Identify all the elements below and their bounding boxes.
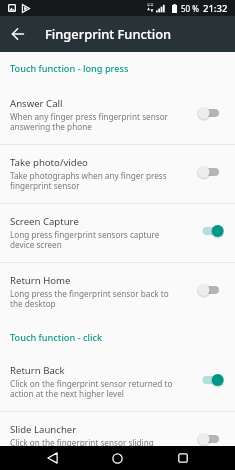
staticText: Answer Call	[10, 97, 63, 110]
button[interactable]: Home	[85, 446, 150, 470]
staticText: Click on the fingerprint sensor returned…	[10, 378, 173, 399]
staticText: Screen Capture	[10, 215, 79, 228]
button[interactable]: Take photo/video	[0, 145, 235, 203]
staticText: Long press fingerprint sensors capture d…	[10, 229, 160, 250]
staticText: Touch function - click	[10, 331, 103, 344]
staticText: 50 %	[181, 3, 199, 14]
staticText: Click on the fingerprint sensor sliding …	[10, 437, 154, 458]
staticText: Return Home	[10, 274, 71, 287]
staticText: 21:32	[203, 2, 228, 15]
staticText: When any finger press fingerprint sensor…	[10, 111, 168, 132]
staticText: Return Back	[10, 364, 65, 377]
button[interactable]: Screen Capture	[0, 204, 235, 262]
staticText: Touch function - long press	[10, 62, 129, 75]
button[interactable]: Slide Launcher	[0, 412, 235, 470]
button[interactable]: Back	[20, 446, 85, 470]
staticText: Slide Launcher	[10, 423, 77, 436]
button[interactable]: Return Home	[0, 263, 235, 321]
staticText: Take photo/video	[10, 156, 88, 169]
staticText: Fingerprint Function	[45, 25, 172, 43]
staticText: Take photographs when any finger press f…	[10, 170, 167, 191]
button[interactable]: Return Back	[0, 353, 235, 411]
staticText: Long press the fingerprint sensor back t…	[10, 288, 169, 309]
button[interactable]: Recent apps	[150, 446, 215, 470]
button[interactable]: Answer Call	[0, 86, 235, 144]
button[interactable]: Navigate up	[0, 16, 34, 52]
